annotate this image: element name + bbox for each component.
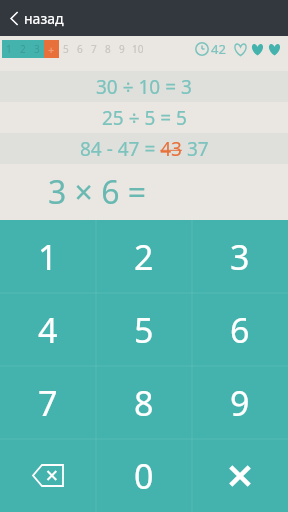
staticText: 7 [38,380,58,426]
button[interactable]: 8 [96,366,192,439]
staticText: 7 [91,42,97,56]
staticText: + [48,42,55,57]
button[interactable]: 6 [192,293,288,366]
button[interactable]: 5 [96,293,192,366]
staticText: 5 [63,42,69,56]
staticText: 6 [77,42,83,56]
button[interactable]: 1 [0,220,96,293]
staticText: 8 [134,380,154,426]
staticText: 3 [230,234,250,280]
staticText: назад [24,9,64,28]
staticText: 6 [230,307,250,353]
button[interactable]: назад [0,5,78,32]
staticText: 9 [119,42,125,56]
staticText: 3 × 6 = [48,170,147,214]
staticText: 8 [105,42,111,56]
button[interactable]: Backspace [0,439,96,512]
button[interactable]: 3 [192,220,288,293]
staticText: 25 ÷ 5 = 5 [102,105,187,131]
staticText: 5 [134,307,154,353]
button[interactable]: 4 [0,293,96,366]
staticText: 2 [134,234,154,280]
button[interactable]: 7 [0,366,96,439]
button[interactable]: Close [192,439,288,512]
button[interactable]: 9 [192,366,288,439]
staticText: 3 [34,42,40,56]
staticText: 84 - 47 = 43 37 [80,136,209,162]
staticText: 1 [6,42,12,56]
staticText: 1 [38,234,58,280]
staticText: 10 [132,42,144,56]
button[interactable]: 2 [96,220,192,293]
staticText: 4 [38,307,58,353]
staticText: 2 [20,42,26,56]
staticText: 9 [230,380,250,426]
staticText: 0 [134,453,154,499]
staticText: 30 ÷ 10 = 3 [96,74,192,100]
staticText: 42 [211,40,226,58]
button[interactable]: 0 [96,439,192,512]
